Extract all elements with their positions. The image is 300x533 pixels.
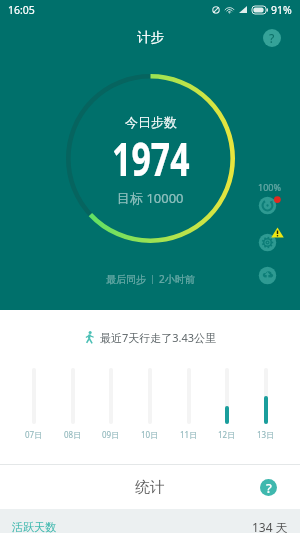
staticText: 11日 (180, 429, 198, 440)
staticText: 统计 (135, 478, 165, 497)
staticText: 活跃天数 (12, 520, 56, 533)
button[interactable]: Settings warning (258, 233, 277, 252)
button[interactable]: 统计 (0, 465, 300, 509)
button[interactable] (16, 368, 52, 424)
staticText: 最后同步 (106, 273, 146, 286)
button[interactable] (93, 368, 129, 424)
button[interactable]: Help (263, 29, 281, 47)
button[interactable]: 最后同步 (106, 272, 195, 286)
button[interactable]: Help (260, 479, 277, 496)
button[interactable] (132, 368, 168, 424)
staticText: 2小时前 (159, 272, 195, 286)
staticText: 09日 (102, 429, 120, 440)
staticText: 计步 (137, 29, 164, 46)
staticText: 目标 10000 (117, 189, 184, 207)
button[interactable] (55, 368, 91, 424)
staticText: 91% (271, 3, 292, 17)
button[interactable] (209, 368, 245, 424)
staticText: 100% (258, 181, 281, 193)
button[interactable]: Steps source (258, 196, 277, 215)
button[interactable]: Upload to cloud (258, 266, 277, 285)
staticText: 10日 (141, 429, 159, 440)
staticText: 13日 (257, 429, 275, 440)
staticText: ? (269, 30, 275, 46)
staticText: 16:05 (8, 3, 35, 17)
button[interactable]: 活跃天数 (0, 509, 300, 533)
staticText: 1974 (112, 126, 190, 190)
staticText: 12日 (218, 429, 236, 440)
staticText: 07日 (25, 429, 43, 440)
button[interactable] (171, 368, 207, 424)
staticText: 134 天 (252, 519, 288, 533)
button[interactable] (248, 368, 284, 424)
staticText: 最近7天行走了3.43公里 (100, 330, 217, 345)
staticText: 今日步数 (125, 114, 177, 130)
staticText: 08日 (64, 429, 82, 440)
staticText: ? (266, 479, 272, 496)
